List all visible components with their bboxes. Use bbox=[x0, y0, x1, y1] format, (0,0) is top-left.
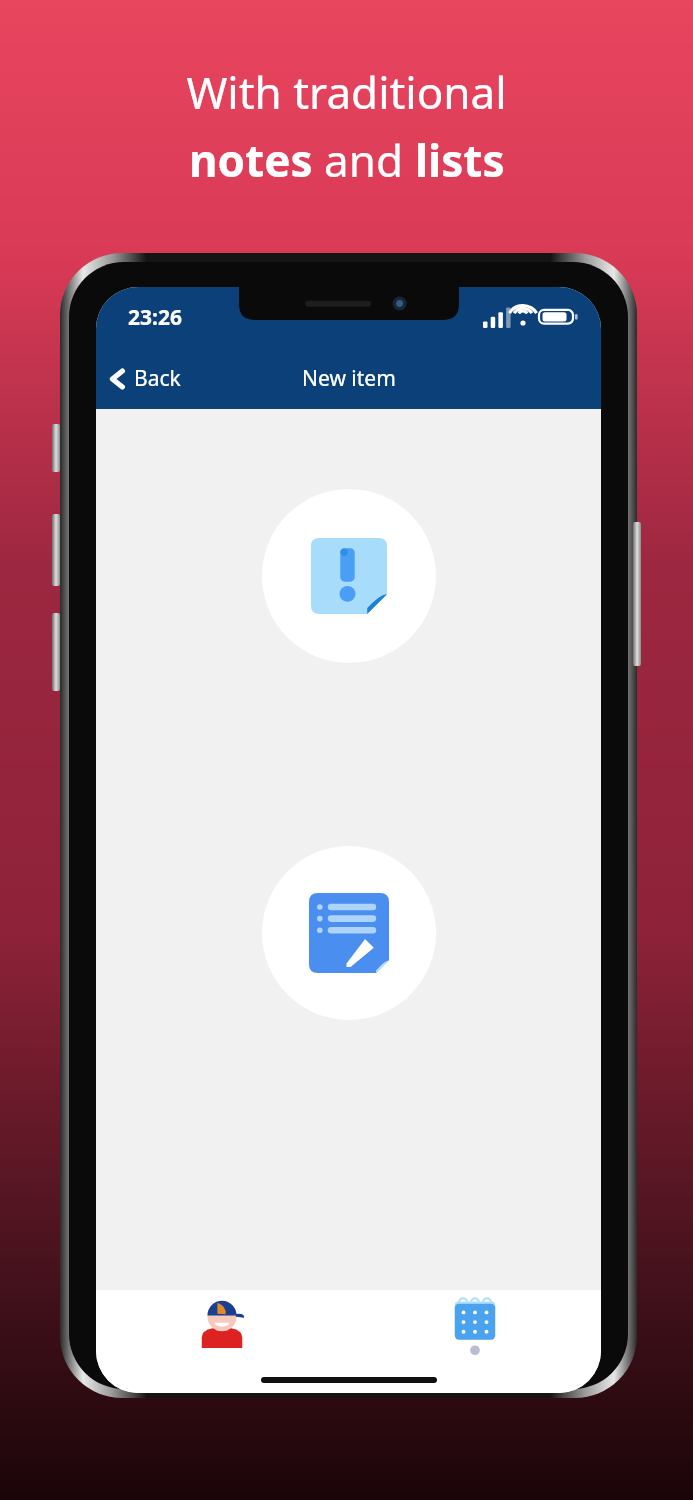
button[interactable]: New list bbox=[262, 846, 436, 1020]
button[interactable]: Profile bbox=[96, 1290, 348, 1367]
staticText: New item bbox=[302, 364, 396, 393]
other: New list bbox=[309, 893, 389, 973]
staticText: notes bbox=[189, 130, 324, 190]
staticText: Back bbox=[134, 364, 181, 393]
button[interactable]: Back bbox=[96, 356, 193, 401]
other: New note bbox=[311, 538, 387, 614]
button[interactable]: Calendar bbox=[348, 1290, 601, 1367]
button[interactable]: New note bbox=[262, 489, 436, 663]
staticText: and bbox=[324, 130, 415, 190]
staticText: lists bbox=[415, 130, 505, 190]
staticText: With traditional bbox=[186, 62, 507, 122]
staticText: 23:26 bbox=[128, 303, 182, 332]
